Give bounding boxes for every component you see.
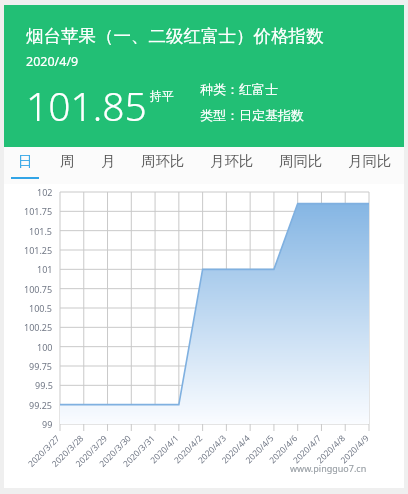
staticText: 种类：红富士: [200, 81, 278, 97]
staticText: 周: [60, 152, 75, 170]
staticText: 101.85: [26, 79, 147, 132]
staticText: 月同比: [348, 152, 392, 170]
button[interactable]: 周环比: [128, 147, 197, 184]
staticText: 烟台苹果（一、二级红富士）价格指数: [26, 25, 324, 47]
button[interactable]: 月同比: [335, 147, 404, 184]
staticText: 周同比: [279, 152, 323, 170]
staticText: 月环比: [210, 152, 254, 170]
staticText: 2020/4/9: [26, 53, 79, 70]
staticText: 周环比: [141, 152, 185, 170]
staticText: 日: [18, 152, 33, 170]
button[interactable]: 周: [46, 147, 87, 184]
button[interactable]: 周同比: [266, 147, 335, 184]
staticText: 类型：日定基指数: [200, 107, 304, 123]
button[interactable]: 月环比: [197, 147, 266, 184]
button[interactable]: 月: [87, 147, 128, 184]
staticText: 持平: [150, 88, 174, 103]
button[interactable]: 日: [4, 147, 46, 184]
staticText: 月: [101, 152, 116, 170]
